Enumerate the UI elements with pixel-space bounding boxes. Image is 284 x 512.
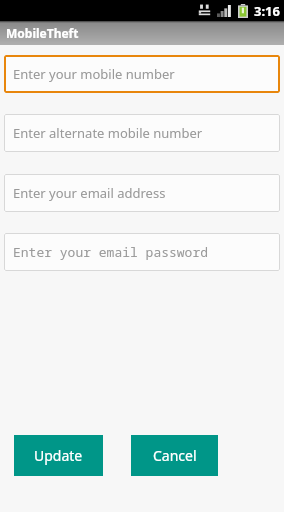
button[interactable]: Update (14, 435, 103, 476)
staticText: 3:16 (254, 2, 280, 20)
staticText: Enter your mobile number (13, 65, 175, 83)
button[interactable]: Enter your email password (4, 233, 280, 271)
staticText: Cancel (153, 446, 197, 465)
button[interactable]: Enter your email address (4, 174, 280, 212)
button[interactable]: Enter alternate mobile number (4, 114, 280, 152)
staticText: MobileTheft (6, 25, 79, 41)
staticText: Enter your email password (13, 243, 209, 261)
staticText: Enter your email address (13, 184, 166, 202)
staticText: Enter alternate mobile number (13, 124, 203, 142)
button[interactable]: Enter your mobile number (4, 55, 280, 93)
button[interactable]: Cancel (131, 435, 218, 476)
staticText: Update (34, 446, 83, 465)
